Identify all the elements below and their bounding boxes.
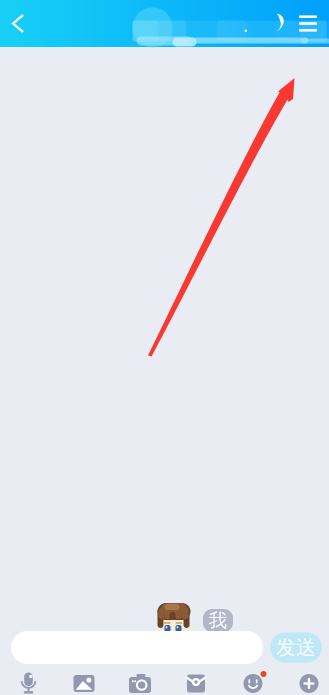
button[interactable]: More [287, 667, 329, 695]
staticText: 我 [208, 609, 227, 632]
staticText: 发送 [276, 635, 316, 660]
button[interactable]: Camera [118, 667, 162, 695]
button[interactable]: 发送 [270, 632, 322, 662]
button[interactable]: Back [0, 0, 39, 47]
button[interactable]: Message [11, 631, 263, 664]
button[interactable]: Menu [292, 0, 324, 47]
button[interactable]: Sound [266, 0, 292, 47]
button[interactable]: Mail [174, 667, 218, 695]
button[interactable]: Voice message [6, 667, 50, 695]
button[interactable]: Photos [62, 667, 106, 695]
button[interactable]: Stickers [231, 667, 275, 695]
